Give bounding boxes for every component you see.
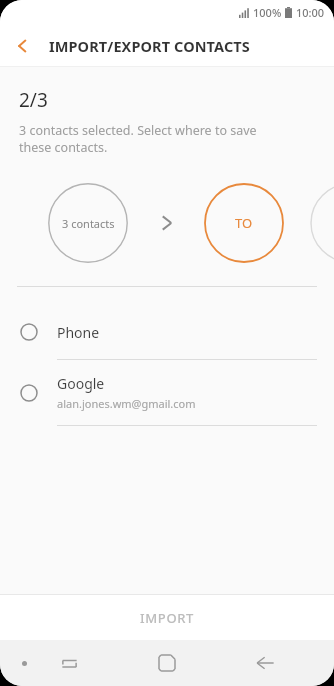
staticText: 100% [253,5,282,20]
button[interactable]: Hide navigation bar [11,650,37,676]
button[interactable]: Back [242,640,288,686]
button[interactable]: TO [204,183,284,263]
button[interactable]: Recent apps [46,640,92,686]
button[interactable]: Home [144,640,190,686]
staticText: 10:00 [296,5,325,20]
staticText: IMPORT [140,609,194,627]
staticText: 3 contacts [62,216,115,231]
button[interactable]: Google [0,360,334,425]
button[interactable]: Phone [0,305,334,359]
staticText: Google [57,374,105,393]
button[interactable]: Navigate up [0,24,44,67]
staticText: Phone [57,323,100,342]
button[interactable]: IMPORT [0,595,334,640]
button[interactable]: 3 contacts [48,183,128,263]
staticText: IMPORT/EXPORT CONTACTS [49,36,250,56]
staticText: 3 contacts selected. Select where to sav… [19,122,257,156]
staticText: TO [235,214,253,232]
staticText: 2/3 [19,87,48,113]
staticText: alan.jones.wm@gmail.com [57,396,196,411]
